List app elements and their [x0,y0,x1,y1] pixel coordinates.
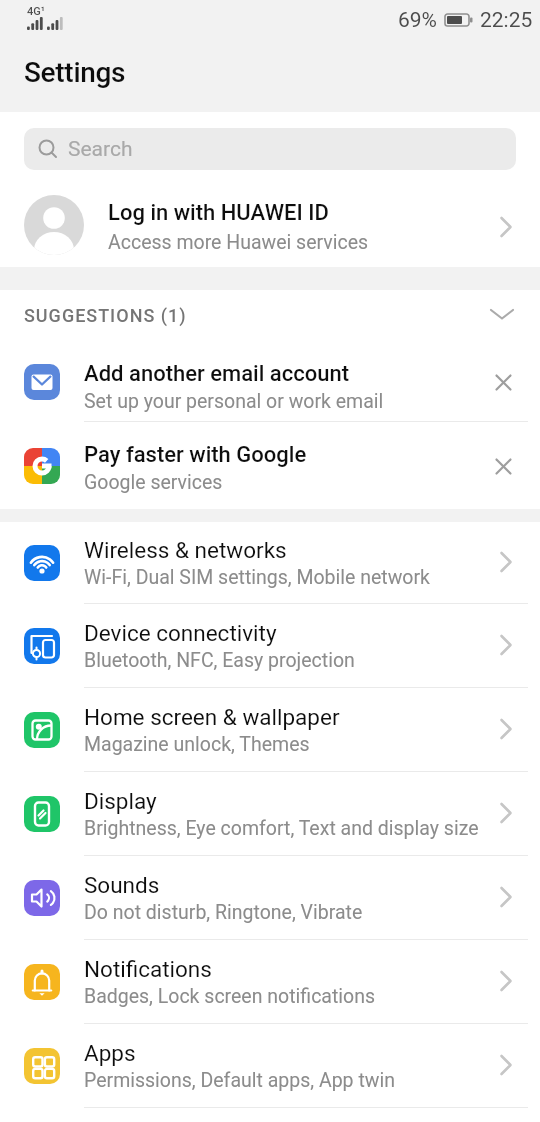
button[interactable] [495,458,512,475]
staticText: Display [84,788,157,814]
staticText: Google services [84,471,223,494]
staticText: SUGGESTIONS (1) [24,305,187,326]
button[interactable]: Display [0,772,540,856]
staticText: Search [68,137,133,162]
staticText: Badges, Lock screen notifications [84,985,376,1008]
button[interactable]: Device connectivity [0,604,540,688]
staticText: Pay faster with Google [84,442,307,468]
staticText: Log in with HUAWEI ID [108,200,329,226]
button[interactable]: Home screen & wallpaper [0,688,540,772]
staticText: Access more Huawei services [108,231,369,254]
button[interactable]: Log in with HUAWEI ID [0,170,540,267]
staticText: Settings [24,56,126,89]
staticText: Sounds [84,872,160,898]
staticText: Notifications [84,956,212,982]
button[interactable]: Sounds [0,856,540,940]
staticText: 4G¹ [27,5,45,18]
staticText: Home screen & wallpaper [84,704,340,730]
button[interactable]: Apps [0,1024,540,1108]
button[interactable]: Pay faster with Google [0,422,540,509]
staticText: Magazine unlock, Themes [84,733,310,756]
button[interactable]: Notifications [0,940,540,1024]
staticText: 22:25 [480,8,533,33]
button[interactable]: Wireless & networks [0,522,540,604]
staticText: Apps [84,1040,136,1066]
button[interactable] [495,374,512,391]
button[interactable]: SUGGESTIONS (1) [0,290,540,338]
staticText: Add another email account [84,361,350,387]
button[interactable]: Search [24,128,516,170]
staticText: Do not disturb, Ringtone, Vibrate [84,901,363,924]
staticText: Permissions, Default apps, App twin [84,1069,395,1092]
staticText: 69% [398,8,437,33]
staticText: Wireless & networks [84,537,287,563]
staticText: Set up your personal or work email [84,390,384,413]
staticText: Device connectivity [84,620,277,646]
staticText: Wi-Fi, Dual SIM settings, Mobile network [84,566,430,589]
button[interactable]: Add another email account [0,338,540,422]
staticText: Brightness, Eye comfort, Text and displa… [84,817,479,840]
staticText: Bluetooth, NFC, Easy projection [84,649,355,672]
